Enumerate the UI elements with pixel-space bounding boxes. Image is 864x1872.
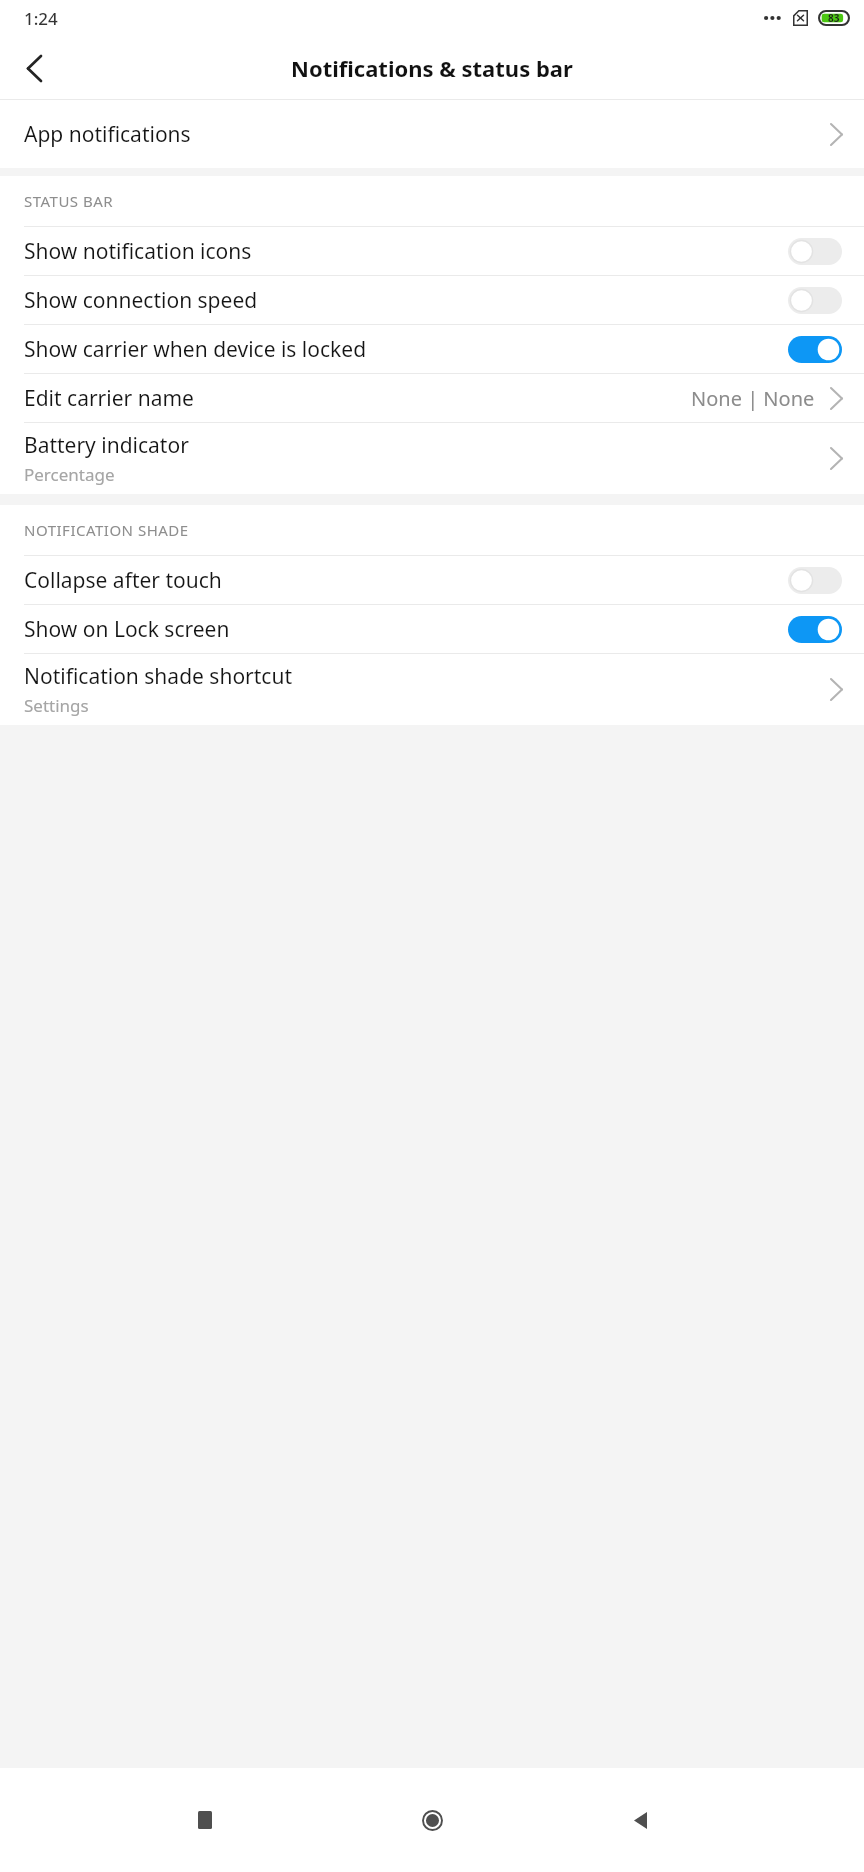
staticText: Show on Lock screen (24, 615, 788, 644)
button[interactable]: Show notification icons (0, 227, 864, 275)
button[interactable]: Battery indicator (0, 423, 864, 494)
button[interactable]: Back (612, 1792, 668, 1848)
staticText: Percentage (24, 463, 115, 486)
button[interactable]: Show connection speed (0, 276, 864, 324)
staticText: Show carrier when device is locked (24, 335, 788, 364)
staticText: Edit carrier name (24, 384, 194, 413)
staticText: 83 (828, 11, 840, 25)
staticText: STATUS BAR (24, 191, 114, 211)
staticText: Show notification icons (24, 237, 788, 266)
staticText: NOTIFICATION SHADE (24, 520, 189, 540)
button[interactable]: Back (6, 40, 62, 96)
staticText: Battery indicator (24, 431, 189, 460)
staticText: Collapse after touch (24, 566, 788, 595)
staticText: None | None (691, 385, 815, 412)
button[interactable]: Show carrier when device is locked (0, 325, 864, 373)
button[interactable]: Notification shade shortcut (0, 654, 864, 725)
staticText: App notifications (24, 120, 191, 149)
button[interactable]: Recent apps (177, 1792, 233, 1848)
staticText: Notification shade shortcut (24, 662, 292, 691)
button[interactable]: Collapse after touch (0, 556, 864, 604)
staticText: 1:24 (24, 7, 58, 30)
button[interactable]: Edit carrier name (0, 374, 864, 422)
staticText: Show connection speed (24, 286, 788, 315)
button[interactable]: Home (404, 1792, 460, 1848)
staticText: Settings (24, 694, 89, 717)
button[interactable]: Show on Lock screen (0, 605, 864, 653)
staticText: Notifications & status bar (291, 53, 573, 83)
